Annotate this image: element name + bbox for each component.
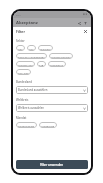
button[interactable]: Publikation (48, 61, 66, 67)
button[interactable]: Bundesland auswählen (16, 86, 88, 94)
button[interactable]: Weltkreis auswählen (16, 104, 88, 112)
staticText: ▮▮ ▮ (83, 13, 88, 16)
staticText: Die Linke (18, 71, 29, 74)
staticText: Weltkreis (16, 98, 29, 102)
button[interactable]: Branche Wohlbefinden (16, 53, 47, 59)
button[interactable]: Direktmandat (16, 122, 37, 128)
staticText: Gruppe Dienstes (51, 55, 71, 58)
staticText: Talk (18, 47, 23, 50)
button[interactable]: Landesliste (39, 122, 57, 128)
button[interactable]: TOP (27, 45, 36, 51)
staticText: Bundesland auswählen (18, 88, 48, 92)
staticText: Gruppe MSR (18, 63, 33, 66)
button[interactable]: eTB (37, 61, 46, 67)
button[interactable]: Gruppe Dienstes (49, 53, 73, 59)
staticText: Publikation (50, 63, 64, 66)
staticText: Landesliste (41, 124, 55, 127)
staticText: Mandat (16, 116, 27, 120)
staticText: eTB (39, 63, 44, 66)
staticText: Filter anwenden (40, 163, 64, 167)
staticText: Bundesland (16, 80, 32, 84)
button[interactable]: Filter anwenden (16, 160, 88, 169)
staticText: Industrie (40, 47, 51, 50)
button[interactable]: Gruppe MSR (16, 61, 35, 67)
staticText: Direktmandat (18, 124, 35, 127)
staticText: Akzeptanz (16, 20, 38, 26)
button[interactable]: Filter (82, 20, 88, 26)
staticText: Filter (16, 29, 25, 34)
button[interactable]: Industrie (38, 45, 53, 51)
staticText: 9:41 (16, 13, 21, 16)
button[interactable]: Close (82, 28, 88, 34)
button[interactable]: Die Linke (16, 69, 31, 75)
staticText: Weltkreis auswählen (18, 106, 44, 110)
staticText: Sektor (16, 39, 25, 43)
staticText: TOP (29, 47, 34, 50)
staticText: Branche Wohlbefinden (18, 55, 45, 58)
button[interactable]: Share (76, 20, 82, 26)
button[interactable]: Talk (16, 45, 25, 51)
